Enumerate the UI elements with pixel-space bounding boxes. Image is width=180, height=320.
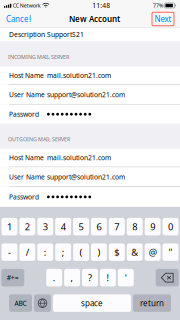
staticText: - [8, 246, 11, 258]
staticText: / [26, 246, 29, 258]
staticText: Next [154, 14, 171, 24]
staticText: ) [97, 246, 100, 258]
button[interactable]: Password [0, 105, 180, 124]
staticText: . [53, 271, 56, 284]
button[interactable]: $ [109, 243, 125, 261]
staticText: User Name [9, 172, 45, 181]
button[interactable]: Next keyboard [34, 294, 51, 312]
staticText: ! [106, 271, 109, 284]
staticText: 4 [61, 220, 66, 233]
button[interactable]: 2 [19, 218, 35, 235]
button[interactable]: #+= [1, 269, 24, 286]
staticText: $ [114, 246, 119, 258]
button[interactable]: Next [152, 12, 174, 26]
button[interactable]: Host Name [0, 149, 180, 167]
staticText: 8 [132, 220, 137, 233]
staticText: User Name [9, 90, 45, 99]
button[interactable]: ; [55, 243, 71, 261]
staticText: Host Name [9, 153, 44, 162]
button[interactable]: ) [91, 243, 107, 261]
button[interactable]: 9 [145, 218, 161, 235]
staticText: Cancel [6, 14, 31, 24]
staticText: 2 [25, 220, 30, 233]
button[interactable]: Delete [156, 269, 179, 286]
staticText: Description [9, 30, 45, 39]
button[interactable]: 3 [37, 218, 53, 235]
staticText: 77% [153, 2, 163, 9]
button[interactable]: 4 [55, 218, 71, 235]
staticText: CC Network [13, 2, 41, 9]
button[interactable]: @ [145, 243, 161, 261]
staticText: 1 [7, 220, 12, 233]
button[interactable]: User Name [0, 85, 180, 104]
button[interactable]: ' [118, 269, 134, 286]
staticText: 11:48 [92, 1, 110, 10]
button[interactable]: Description [0, 27, 180, 41]
button[interactable]: Cancel [6, 11, 37, 27]
button[interactable]: ! [100, 269, 116, 286]
staticText: ? [88, 271, 92, 284]
staticText: " [169, 246, 173, 258]
staticText: Password [9, 192, 39, 201]
staticText: Host Name [9, 71, 44, 80]
button[interactable]: Host Name [0, 66, 180, 84]
staticText: mail.solution21.com [47, 71, 111, 80]
staticText: 6 [96, 220, 101, 233]
staticText: , [71, 271, 74, 284]
staticText: ; [62, 246, 65, 258]
staticText: 5 [78, 220, 83, 233]
button[interactable]: return [133, 294, 171, 312]
staticText: 0 [168, 220, 173, 233]
staticText: 9 [150, 220, 155, 233]
staticText: space [81, 298, 103, 308]
button[interactable]: 6 [91, 218, 107, 235]
button[interactable]: User Name [0, 167, 180, 186]
button[interactable]: Password [0, 187, 180, 207]
button[interactable]: / [19, 243, 35, 261]
button[interactable]: : [37, 243, 53, 261]
staticText: mail.solution21.com [47, 153, 111, 162]
staticText: #+= [7, 273, 19, 282]
staticText: ' [125, 271, 127, 284]
button[interactable]: 7 [109, 218, 125, 235]
staticText: & [131, 246, 138, 258]
staticText: New Account [69, 14, 120, 24]
staticText: : [44, 246, 47, 258]
button[interactable]: ? [82, 269, 98, 286]
staticText: support@solution21.com [47, 172, 125, 181]
button[interactable]: ( [73, 243, 89, 261]
staticText: 7 [114, 220, 119, 233]
staticText: support@solution21.com [47, 90, 125, 99]
staticText: ( [79, 246, 82, 258]
button[interactable]: 0 [163, 218, 178, 235]
staticText: @ [149, 246, 157, 258]
button[interactable]: . [46, 269, 62, 286]
staticText: ABC [14, 299, 26, 308]
staticText: return [140, 298, 164, 308]
staticText: 3 [43, 220, 48, 233]
staticText: INCOMING MAIL SERVER [8, 53, 69, 60]
staticText: Password [9, 110, 39, 119]
button[interactable]: 8 [127, 218, 143, 235]
staticText: SupportS21 [47, 30, 84, 39]
button[interactable]: ABC [9, 294, 32, 312]
button[interactable]: - [1, 243, 17, 261]
button[interactable]: " [163, 243, 178, 261]
button[interactable]: 5 [73, 218, 89, 235]
button[interactable]: & [127, 243, 143, 261]
staticText: OUTGOING MAIL SERVER [8, 136, 70, 143]
button[interactable]: , [64, 269, 80, 286]
button[interactable]: space [53, 294, 131, 312]
button[interactable]: 1 [1, 218, 17, 235]
